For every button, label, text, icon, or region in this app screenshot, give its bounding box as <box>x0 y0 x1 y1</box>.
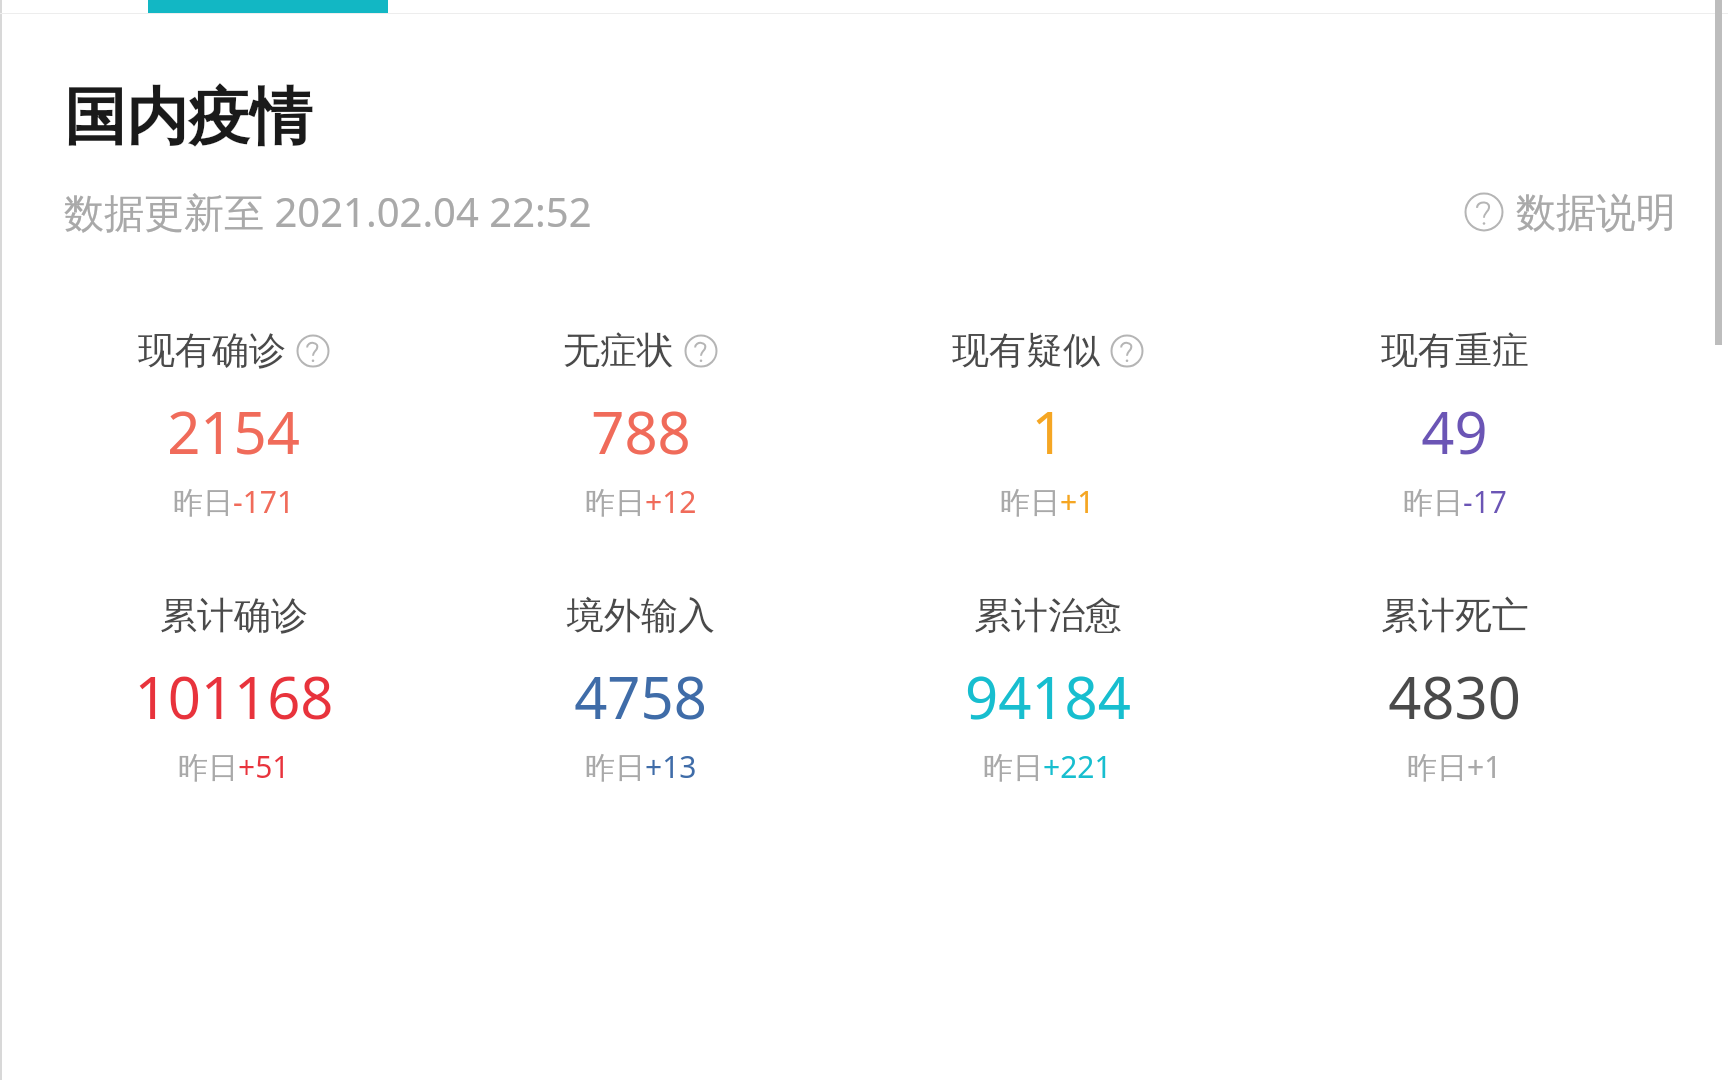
staticText: 无症状 <box>563 327 674 374</box>
staticText: 788 <box>591 392 691 471</box>
staticText: 昨日+51 <box>178 746 290 787</box>
button[interactable]: 现有确诊 <box>30 327 437 522</box>
staticText: 1 <box>1031 392 1065 471</box>
other: 说明 <box>296 334 330 368</box>
other: 说明 <box>684 334 718 368</box>
button[interactable]: 累计死亡 <box>1251 592 1658 787</box>
button[interactable]: 现有疑似 <box>844 327 1251 522</box>
button[interactable]: 累计确诊 <box>30 592 437 787</box>
staticText: 2154 <box>167 392 300 471</box>
staticText: 累计治愈 <box>974 592 1122 639</box>
staticText: 现有重症 <box>1381 327 1529 374</box>
staticText: 4830 <box>1388 657 1521 736</box>
staticText: 国内疫情 <box>64 78 312 156</box>
staticText: 昨日-17 <box>1403 481 1507 522</box>
staticText: 昨日+12 <box>585 481 697 522</box>
staticText: 昨日+1 <box>1000 481 1095 522</box>
button[interactable]: 累计治愈 <box>844 592 1251 787</box>
staticText: 累计死亡 <box>1381 592 1529 639</box>
button[interactable]: 无症状 <box>437 327 844 522</box>
staticText: 数据更新至 2021.02.04 22:52 <box>64 184 592 239</box>
staticText: 累计确诊 <box>160 592 308 639</box>
staticText: 现有确诊 <box>138 327 286 374</box>
button[interactable]: 境外输入 <box>437 592 844 787</box>
staticText: 101168 <box>134 657 334 736</box>
staticText: 境外输入 <box>567 592 715 639</box>
staticText: 数据说明 <box>1516 187 1676 237</box>
staticText: 94184 <box>965 657 1131 736</box>
staticText: 现有疑似 <box>952 327 1100 374</box>
button[interactable]: 现有重症 <box>1251 327 1658 522</box>
staticText: 昨日+221 <box>983 746 1112 787</box>
other: 说明 <box>1110 334 1144 368</box>
staticText: 昨日-171 <box>173 481 295 522</box>
button[interactable]: 数据说明 <box>1464 187 1676 237</box>
staticText: 昨日+1 <box>1407 746 1502 787</box>
staticText: 4758 <box>574 657 707 736</box>
staticText: 昨日+13 <box>585 746 697 787</box>
staticText: 49 <box>1421 392 1488 471</box>
